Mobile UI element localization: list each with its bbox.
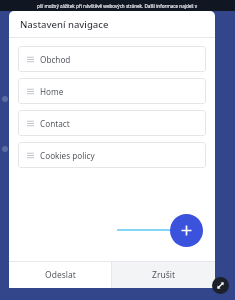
staticText: pší možný zážitek při návštěvě webových … [37, 3, 198, 9]
button[interactable]: Cookies policy [18, 142, 206, 168]
button[interactable]: Přidat položku [170, 214, 203, 247]
button[interactable]: Contact [18, 110, 206, 136]
staticText: Contact [40, 118, 70, 129]
button[interactable]: Zrušit [112, 262, 215, 288]
button[interactable]: Home [18, 78, 206, 104]
staticText: Cookies policy [40, 150, 95, 161]
button[interactable]: Změnit velikost [212, 277, 229, 294]
staticText: Home [40, 86, 64, 97]
staticText: Odeslat [45, 269, 76, 281]
button[interactable]: Obchod [18, 46, 206, 72]
button[interactable]: Odeslat [9, 262, 111, 288]
staticText: Nastavení navigace [20, 18, 109, 31]
staticText: Zrušit [152, 269, 175, 281]
staticText: Obchod [40, 54, 71, 65]
